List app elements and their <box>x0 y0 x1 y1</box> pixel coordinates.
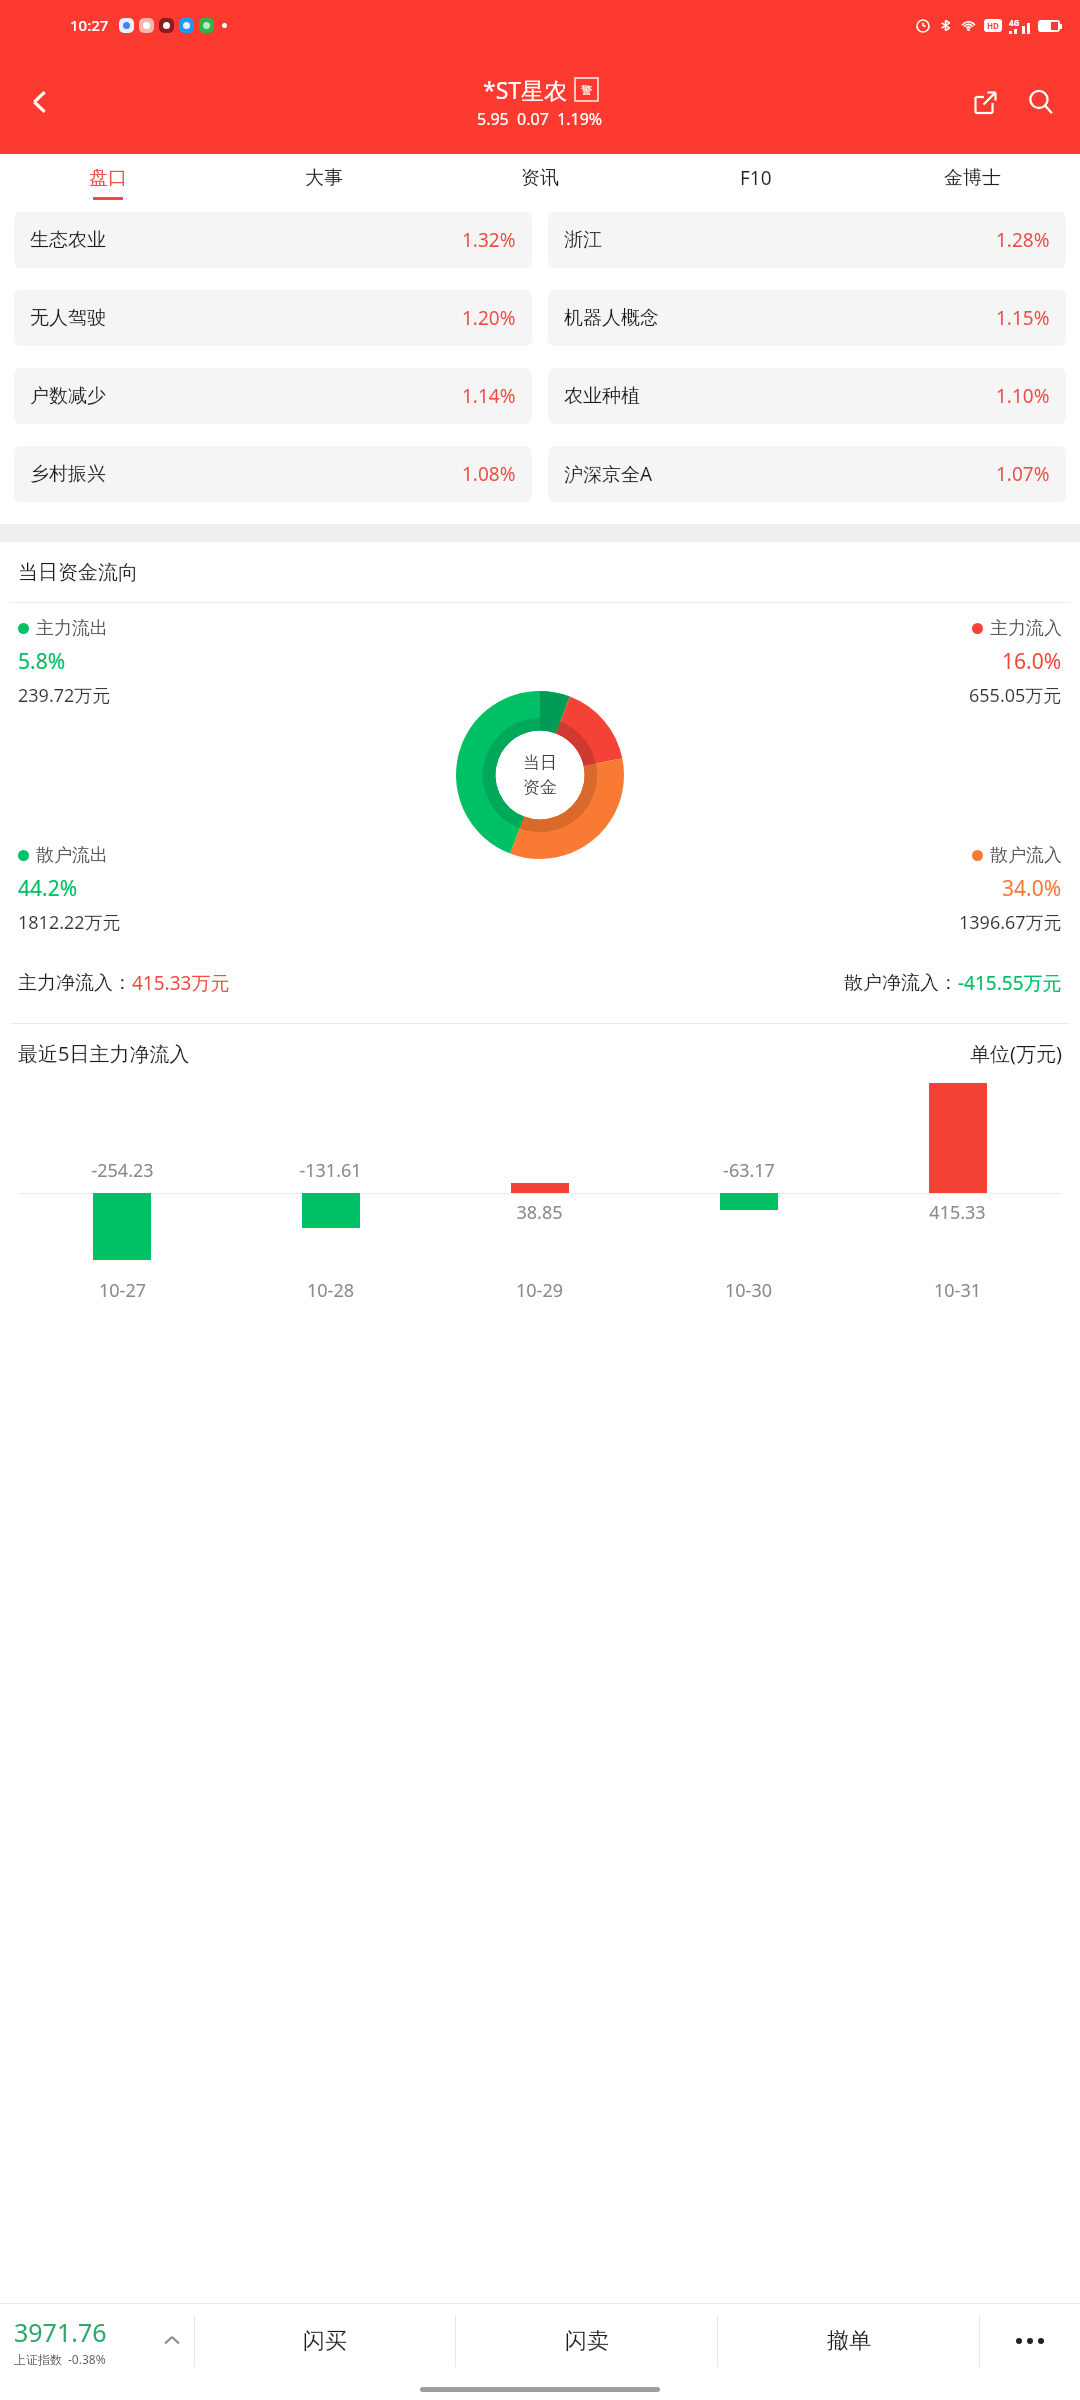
staticText: *ST星农 <box>483 74 568 105</box>
button[interactable]: 无人驾驶 <box>14 290 532 346</box>
staticText: 415.33 <box>929 1200 986 1225</box>
staticText: 1812.22万元 <box>18 910 121 935</box>
button[interactable]: 撤单 <box>718 2304 979 2378</box>
button[interactable]: 大事 <box>216 154 432 212</box>
staticText: 5.8% <box>18 647 66 676</box>
button[interactable]: 盘口 <box>0 154 216 212</box>
staticText: HD <box>987 20 999 31</box>
staticText: 415.33万元 <box>132 970 230 996</box>
staticText: 撤单 <box>827 2327 871 2355</box>
staticText: 1.08% <box>462 461 516 487</box>
staticText: -131.61 <box>299 1158 362 1183</box>
staticText: 生态农业 <box>30 228 106 252</box>
staticText: 5.95 0.07 1.19% <box>477 108 603 130</box>
staticText: 闪买 <box>303 2327 347 2355</box>
staticText: -415.55万元 <box>958 970 1062 996</box>
staticText: 主力流入 <box>990 617 1062 640</box>
staticText: 上证指数 <box>14 2352 62 2367</box>
staticText: 4G <box>1009 17 1020 28</box>
staticText: 单位(万元) <box>970 1040 1062 1067</box>
staticText: 当日 <box>523 752 557 773</box>
button[interactable]: 闪买 <box>195 2304 455 2378</box>
staticText: 乡村振兴 <box>30 462 106 486</box>
button[interactable]: 浙江 <box>548 212 1066 268</box>
staticText: 16.0% <box>1002 647 1062 676</box>
staticText: 散户流出 <box>36 844 108 867</box>
staticText: 1.20% <box>462 305 516 331</box>
button[interactable]: 生态农业 <box>14 212 532 268</box>
staticText: 10-27 <box>99 1278 146 1303</box>
staticText: 239.72万元 <box>18 683 111 708</box>
button[interactable]: Expand <box>150 2304 194 2378</box>
staticText: 沪深京全A <box>564 461 653 487</box>
staticText: 闪卖 <box>565 2327 609 2355</box>
button[interactable]: Search <box>1016 77 1066 127</box>
staticText: -254.23 <box>91 1158 154 1183</box>
staticText: 44.2% <box>18 874 78 903</box>
button[interactable]: 沪深京全A <box>548 446 1066 502</box>
staticText: 户数减少 <box>30 384 106 408</box>
staticText: 1396.67万元 <box>959 910 1062 935</box>
button[interactable]: 资讯 <box>432 154 648 212</box>
button[interactable]: F10 <box>648 154 864 212</box>
staticText: 3971.76 <box>14 2315 107 2349</box>
staticText: 资讯 <box>521 166 559 190</box>
staticText: 38.85 <box>516 1200 563 1225</box>
button[interactable]: 金博士 <box>864 154 1080 212</box>
button[interactable]: Share <box>960 77 1010 127</box>
staticText: 10:27 <box>70 15 109 35</box>
staticText: 1.14% <box>462 383 516 409</box>
staticText: 1.07% <box>996 461 1050 487</box>
staticText: 主力流出 <box>36 617 108 640</box>
staticText: 10-30 <box>725 1278 772 1303</box>
staticText: -63.17 <box>723 1158 775 1183</box>
staticText: 10-29 <box>516 1278 563 1303</box>
staticText: 浙江 <box>564 228 602 252</box>
staticText: 当日资金流向 <box>18 560 138 585</box>
button[interactable]: More <box>980 2304 1080 2378</box>
staticText: 1.15% <box>996 305 1050 331</box>
button[interactable]: 农业种植 <box>548 368 1066 424</box>
staticText: 1.32% <box>462 227 516 253</box>
staticText: 主力净流入： <box>18 971 132 995</box>
staticText: 散户流入 <box>990 844 1062 867</box>
button[interactable]: 机器人概念 <box>548 290 1066 346</box>
staticText: 散户净流入： <box>844 971 958 995</box>
staticText: 最近5日主力净流入 <box>18 1040 190 1067</box>
staticText: 34.0% <box>1002 874 1062 903</box>
staticText: 大事 <box>305 166 343 190</box>
staticText: 金博士 <box>944 166 1001 190</box>
staticText: 资金 <box>523 777 557 798</box>
staticText: 警 <box>581 83 592 97</box>
button[interactable]: 乡村振兴 <box>14 446 532 502</box>
staticText: 机器人概念 <box>564 306 659 330</box>
staticText: 10-31 <box>934 1278 981 1303</box>
staticText: 农业种植 <box>564 384 640 408</box>
staticText: 1.10% <box>996 383 1050 409</box>
staticText: 无人驾驶 <box>30 306 106 330</box>
button[interactable]: 3971.76 <box>0 2304 150 2378</box>
staticText: -0.38% <box>68 2351 106 2367</box>
staticText: 655.05万元 <box>969 683 1062 708</box>
staticText: 盘口 <box>89 166 127 190</box>
staticText: F10 <box>740 165 772 191</box>
button[interactable]: Back <box>12 74 68 130</box>
button[interactable]: 闪卖 <box>456 2304 717 2378</box>
staticText: 10-28 <box>307 1278 354 1303</box>
staticText: 1.28% <box>996 227 1050 253</box>
button[interactable]: 户数减少 <box>14 368 532 424</box>
